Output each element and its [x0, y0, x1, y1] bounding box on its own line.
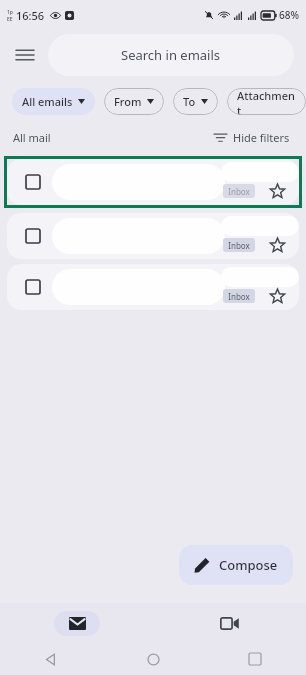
- button[interactable]: Recent apps: [204, 643, 306, 675]
- button[interactable]: From: [104, 88, 164, 115]
- staticText: Search in emails: [121, 46, 221, 64]
- staticText: Attachment: [237, 88, 296, 115]
- button[interactable]: Star conversation: [265, 284, 289, 308]
- button[interactable]: Inbox: [223, 289, 255, 303]
- button[interactable]: Attachment: [227, 88, 306, 115]
- button[interactable]: Meet: [153, 603, 306, 643]
- button[interactable]: Star conversation: [265, 179, 289, 203]
- button[interactable]: Select conversation: [7, 264, 299, 310]
- staticText: All emails: [22, 94, 73, 109]
- button[interactable]: Back: [0, 643, 102, 675]
- button[interactable]: Compose: [179, 545, 293, 585]
- button[interactable]: All emails: [12, 88, 95, 115]
- staticText: 68%: [279, 8, 299, 22]
- button[interactable]: Select conversation: [22, 276, 44, 298]
- button[interactable]: Inbox: [223, 184, 255, 198]
- button[interactable]: To: [173, 88, 218, 115]
- button[interactable]: Select conversation: [22, 171, 44, 193]
- staticText: EE: [7, 16, 13, 23]
- staticText: Compose: [219, 556, 278, 574]
- button[interactable]: Star conversation: [265, 233, 289, 257]
- staticText: From: [114, 94, 142, 109]
- staticText: All mail: [13, 130, 51, 145]
- button[interactable]: Select conversation: [7, 213, 299, 259]
- staticText: 1p: [7, 9, 13, 16]
- button[interactable]: Search in emails: [48, 34, 294, 76]
- button[interactable]: Open navigation menu: [6, 36, 44, 74]
- button[interactable]: Hide filters: [211, 128, 293, 147]
- button[interactable]: Select conversation: [22, 225, 44, 247]
- button[interactable]: Home: [102, 643, 204, 675]
- staticText: Inbox: [228, 186, 250, 197]
- staticText: 16:56: [16, 8, 45, 23]
- button[interactable]: Inbox: [223, 238, 255, 252]
- button[interactable]: Select conversation: [7, 159, 299, 205]
- staticText: To: [183, 94, 196, 109]
- staticText: Inbox: [228, 291, 250, 302]
- staticText: Inbox: [228, 240, 250, 251]
- button[interactable]: Mail: [0, 603, 153, 643]
- staticText: Hide filters: [233, 130, 290, 145]
